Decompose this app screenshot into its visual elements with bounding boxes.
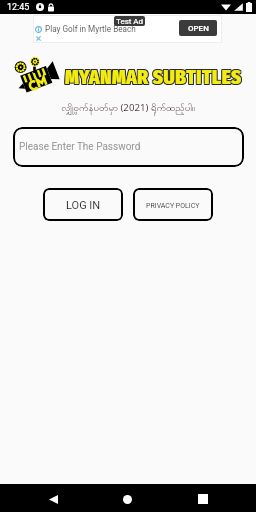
staticText: MYANMAR SUBTITLES: [65, 65, 242, 88]
staticText: OPEN: [188, 24, 209, 33]
button[interactable]: Play Golf in Myrtle Beach: [33, 15, 222, 43]
button[interactable]: Home: [109, 485, 146, 512]
staticText: MYANMAR SUBTITLES: [66, 67, 243, 90]
button[interactable]: OPEN: [179, 20, 217, 36]
staticText: 12:45: [7, 2, 30, 13]
staticText: MYANMAR SUBTITLES: [65, 66, 242, 89]
staticText: PRIVACY POLICY: [146, 202, 200, 210]
button[interactable]: Recent apps: [184, 485, 221, 512]
staticText: LOG IN: [66, 199, 101, 212]
staticText: MYANMAR SUBTITLES: [66, 65, 243, 88]
staticText: လျှို့ဝှက်နံပတ်မှာ (2021) ရိုက်ထည့်ပါ။: [61, 101, 195, 116]
button[interactable]: LOG IN: [43, 188, 123, 221]
staticText: MYANMAR SUBTITLES: [64, 66, 241, 89]
button[interactable]: Back: [35, 485, 72, 512]
staticText: MYANMAR SUBTITLES: [64, 67, 241, 90]
staticText: Please Enter The Password: [19, 141, 141, 153]
button[interactable]: PRIVACY POLICY: [133, 188, 213, 221]
staticText: MYANMAR SUBTITLES: [66, 66, 243, 89]
button[interactable]: Please Enter The Password: [13, 127, 244, 167]
staticText: MYANMAR SUBTITLES: [64, 65, 241, 88]
staticText: Test Ad: [116, 17, 144, 26]
staticText: MYANMAR SUBTITLES: [65, 67, 242, 90]
staticText: Play Golf in Myrtle Beach: [45, 24, 136, 34]
